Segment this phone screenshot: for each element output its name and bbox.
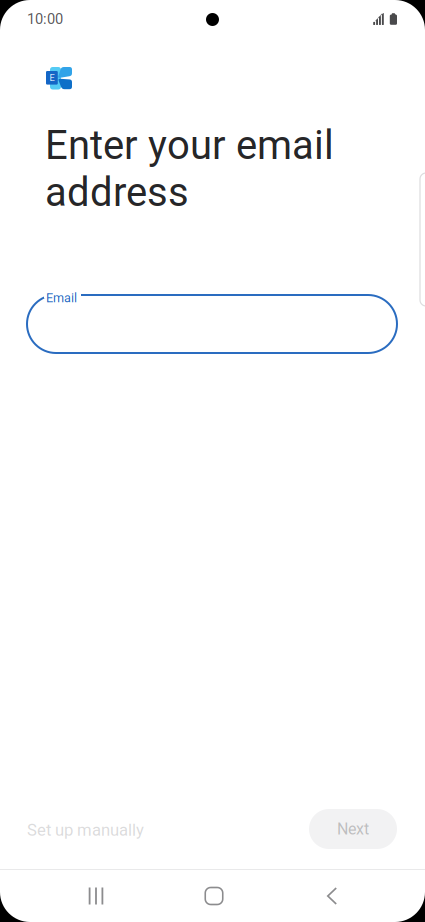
staticText: Enter your email address — [45, 122, 334, 216]
button[interactable]: Set up manually — [27, 810, 151, 850]
button[interactable]: Next — [309, 809, 397, 849]
button[interactable]: Back — [273, 870, 391, 922]
staticText: E — [49, 72, 54, 83]
staticText: Next — [337, 820, 369, 838]
staticText: Email — [46, 290, 77, 305]
button[interactable]: Recent apps — [37, 870, 155, 922]
staticText: Set up manually — [27, 820, 144, 840]
button[interactable]: Home — [155, 870, 273, 922]
staticText: 10:00 — [27, 10, 63, 28]
